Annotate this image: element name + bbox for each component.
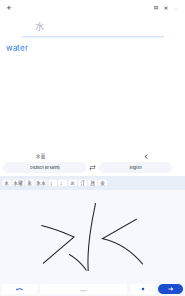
staticText: 氷水: [36, 179, 46, 186]
button[interactable]: 汆: [98, 179, 107, 186]
button[interactable]: Undo: [2, 284, 37, 294]
button[interactable]: 氺: [68, 179, 77, 186]
staticText: 永: [27, 179, 32, 186]
button[interactable]: 汀: [78, 179, 87, 186]
staticText: 水曜: [13, 179, 23, 186]
button[interactable]: Collapse: [141, 151, 151, 161]
button[interactable]: Close: [159, 1, 173, 15]
button[interactable]: Symbols: [131, 284, 155, 294]
staticText: 氺: [70, 179, 75, 186]
staticText: 冫: [60, 179, 65, 186]
staticText: water: [6, 43, 28, 53]
button[interactable]: Enter: [158, 284, 183, 294]
button[interactable]: 永: [25, 179, 34, 186]
button[interactable]: 氵: [48, 179, 57, 186]
button[interactable]: 水: [2, 179, 11, 186]
staticText: 氵: [50, 179, 55, 186]
button[interactable]: Deutsch (erkannt): [3, 162, 86, 173]
staticText: Deutsch (erkannt): [29, 165, 59, 170]
staticText: 汆: [100, 179, 105, 186]
button[interactable]: 水曜: [12, 179, 24, 186]
button[interactable]: 氹: [88, 179, 97, 186]
button[interactable]: English: [99, 162, 172, 173]
button[interactable]: Swap languages: [86, 161, 98, 173]
staticText: English: [129, 165, 141, 170]
staticText: 水: [4, 179, 9, 186]
button[interactable]: 冫: [58, 179, 67, 186]
button[interactable]: Keyboard: [149, 1, 163, 15]
staticText: 水: [35, 19, 44, 33]
staticText: 氹: [90, 179, 95, 186]
button[interactable]: Space: [40, 284, 127, 294]
staticText: 水面: [36, 153, 46, 159]
button[interactable]: Back: [0, 0, 16, 16]
button[interactable]: 氷水: [35, 179, 47, 186]
staticText: 汀: [80, 179, 85, 186]
